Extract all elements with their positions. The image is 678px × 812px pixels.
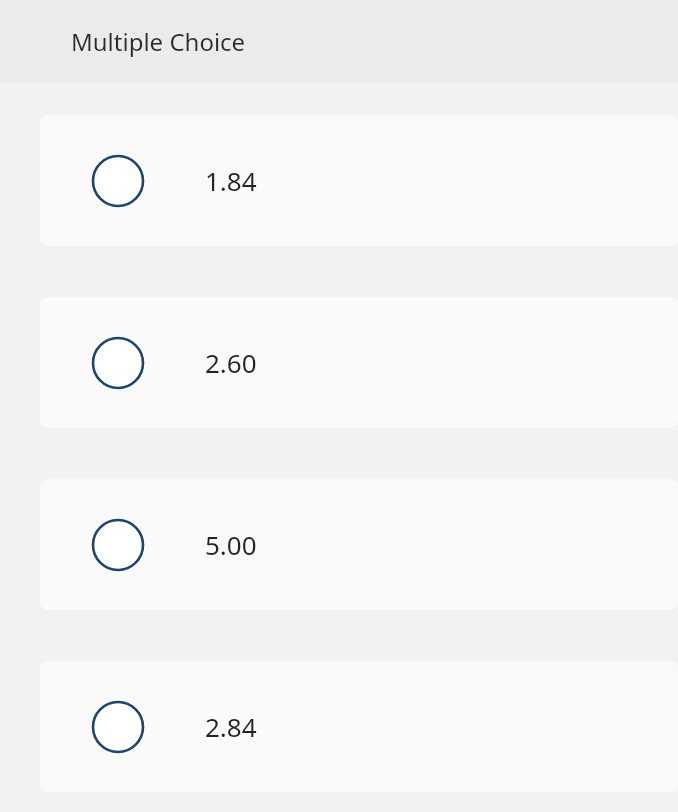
staticText: 5.00 bbox=[205, 527, 257, 562]
button[interactable]: Option 1.84 bbox=[40, 115, 678, 246]
staticText: 2.84 bbox=[205, 709, 257, 744]
staticText: 2.60 bbox=[205, 345, 257, 380]
button[interactable]: Option 2.84 bbox=[40, 661, 678, 792]
staticText: Multiple Choice bbox=[71, 25, 246, 58]
button[interactable]: Option 5.00 bbox=[40, 479, 678, 610]
button[interactable]: Option 2.60 bbox=[40, 297, 678, 428]
staticText: 1.84 bbox=[205, 163, 257, 198]
